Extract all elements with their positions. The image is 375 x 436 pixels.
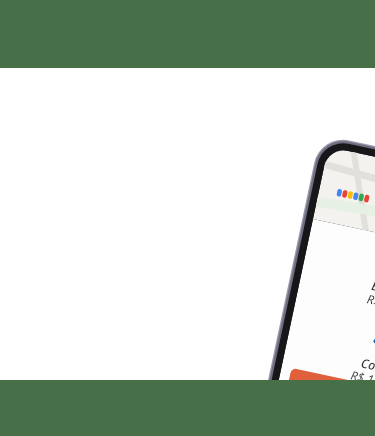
button[interactable]: Ride hailing app phone mockup (0, 0, 375, 436)
